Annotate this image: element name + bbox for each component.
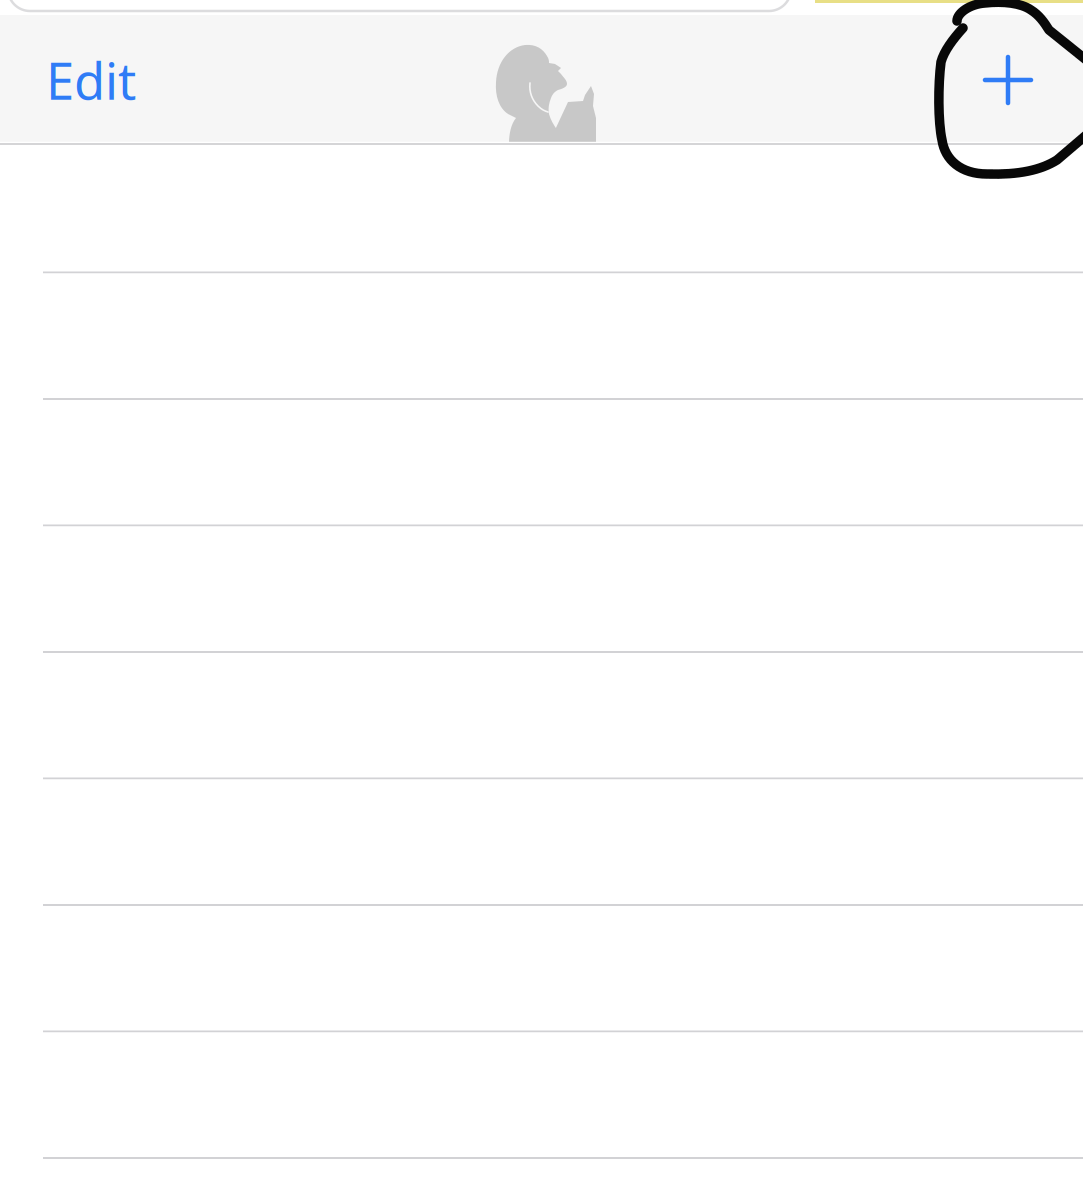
- button[interactable]: [0, 273, 1083, 400]
- button[interactable]: [0, 1032, 1083, 1159]
- button[interactable]: Edit: [46, 15, 226, 145]
- button[interactable]: [0, 400, 1083, 526]
- button[interactable]: [0, 779, 1083, 906]
- button[interactable]: [0, 526, 1083, 653]
- button[interactable]: Add: [933, 15, 1083, 145]
- button[interactable]: [0, 147, 1083, 273]
- button[interactable]: [0, 653, 1083, 779]
- button[interactable]: [0, 906, 1083, 1032]
- staticText: Edit: [46, 46, 136, 114]
